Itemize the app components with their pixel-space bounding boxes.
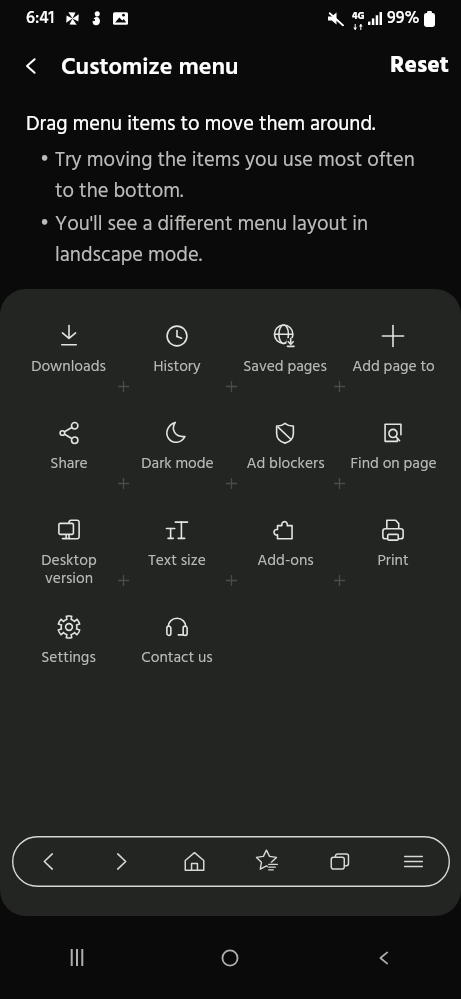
button[interactable]: Back (12, 836, 85, 887)
staticText: Reset (390, 47, 449, 85)
staticText: 6:41 (26, 5, 55, 32)
staticText: Text size (148, 549, 206, 574)
staticText: Print (377, 549, 409, 574)
button[interactable]: Home (158, 836, 231, 887)
staticText: Customize menu (61, 49, 239, 87)
button[interactable]: Dark mode (123, 409, 231, 506)
staticText: Find on page (350, 452, 437, 477)
staticText: Add page to (352, 355, 435, 380)
button[interactable]: Find on page (339, 409, 447, 506)
staticText: Share (50, 452, 88, 477)
staticText: Try moving the items you use most often … (55, 144, 417, 208)
staticText: You'll see a different menu layout in la… (55, 208, 417, 272)
button[interactable]: Home (153, 916, 307, 999)
button[interactable]: Reset (372, 37, 461, 95)
staticText: Add-ons (257, 549, 314, 574)
button[interactable]: Navigate up (9, 44, 53, 88)
staticText: 4G (352, 8, 365, 24)
button[interactable]: Recent apps (0, 916, 153, 999)
staticText: Contact us (141, 646, 213, 671)
staticText: Drag menu items to move them around. (26, 108, 376, 141)
button[interactable]: Forward (85, 836, 158, 887)
staticText: Settings (41, 646, 96, 671)
button[interactable]: Contact us (123, 603, 231, 700)
staticText: Desktop version (41, 549, 97, 591)
button[interactable]: Tabs (304, 836, 377, 887)
button[interactable]: Desktop version (14, 506, 123, 603)
staticText: History (153, 355, 201, 380)
staticText: Saved pages (243, 355, 327, 380)
button[interactable]: Back (307, 916, 461, 999)
button[interactable]: Share (14, 409, 123, 506)
button[interactable]: Ad blockers (231, 409, 339, 506)
staticText: Dark mode (141, 452, 214, 477)
button[interactable]: Downloads (14, 312, 123, 409)
button[interactable]: Print (339, 506, 447, 603)
button[interactable]: Text size (123, 506, 231, 603)
button[interactable]: Bookmarks (231, 836, 304, 887)
button[interactable]: Saved pages (231, 312, 339, 409)
button[interactable]: Settings (14, 603, 123, 700)
button[interactable]: Add-ons (231, 506, 339, 603)
staticText: 99% (387, 5, 420, 32)
button[interactable]: History (123, 312, 231, 409)
staticText: Downloads (31, 355, 106, 380)
staticText: Ad blockers (246, 452, 325, 477)
button[interactable]: Add page to (339, 312, 447, 409)
staticText: • (40, 144, 50, 177)
staticText: • (40, 208, 50, 241)
button[interactable]: Main menu (377, 836, 450, 887)
